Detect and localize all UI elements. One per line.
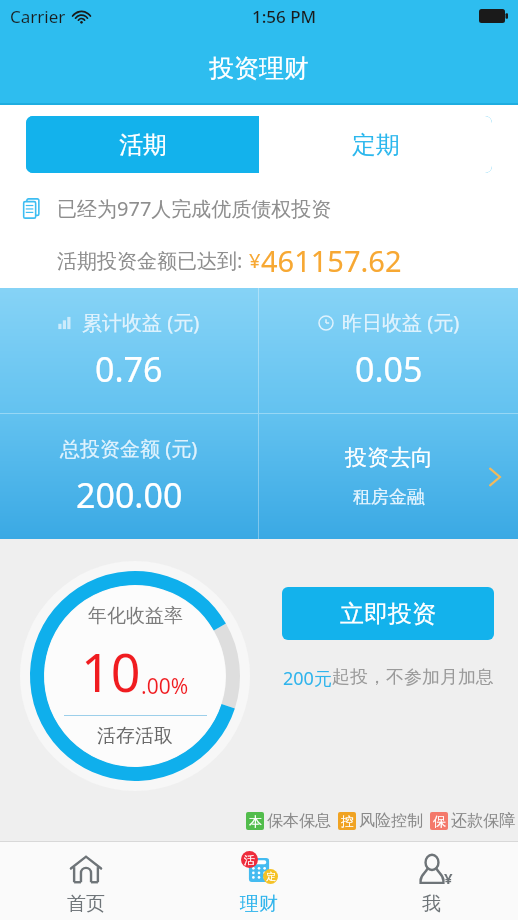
staticText: 投资理财	[209, 53, 309, 84]
staticText: 定期	[352, 130, 400, 160]
staticText: 昨日收益 (元)	[342, 309, 460, 336]
staticText: 立即投资	[340, 599, 436, 629]
staticText: 0.05	[355, 346, 423, 392]
staticText: 年化收益率	[88, 604, 183, 628]
staticText: 定	[266, 870, 276, 883]
button[interactable]: 累计收益 (元)	[0, 288, 258, 413]
staticText: 首页	[67, 892, 105, 916]
staticText: 活存活取	[97, 724, 173, 748]
staticText: 累计收益 (元)	[82, 309, 200, 336]
staticText: 活期	[119, 130, 167, 160]
other: 我	[413, 851, 451, 889]
button[interactable]: 定期	[259, 116, 492, 173]
button[interactable]: 投资去向	[259, 414, 518, 539]
staticText: 保本保息	[267, 811, 331, 831]
staticText: 活期投资金额已达到:	[57, 247, 243, 274]
staticText: 风险控制	[359, 811, 423, 831]
staticText: 1:56 PM	[252, 5, 317, 28]
staticText: 我	[422, 892, 441, 916]
button[interactable]: 活期	[26, 116, 259, 173]
staticText: 还款保障	[451, 811, 515, 831]
button[interactable]: 首页	[0, 842, 172, 920]
button[interactable]: 我	[345, 842, 518, 920]
staticText: Carrier	[10, 5, 66, 28]
staticText: 保	[433, 813, 446, 829]
button[interactable]: 理财	[172, 842, 345, 920]
staticText: 投资去向	[345, 444, 433, 472]
staticText: 0.76	[95, 346, 163, 392]
staticText: 200元	[283, 666, 332, 691]
other: 理财	[239, 850, 279, 890]
staticText: 200.00	[76, 472, 183, 518]
staticText: ¥	[444, 868, 453, 888]
staticText: 已经为977人完成优质债权投资	[57, 195, 332, 222]
staticText: 理财	[240, 892, 278, 916]
button[interactable]: 总投资金额 (元)	[0, 414, 258, 539]
staticText: 10	[81, 636, 141, 707]
staticText: 活	[244, 853, 255, 867]
staticText: 控	[341, 813, 354, 829]
button[interactable]: 立即投资	[282, 587, 494, 640]
staticText: 461157.62	[261, 241, 402, 280]
staticText: .00%	[141, 672, 189, 701]
staticText: 总投资金额 (元)	[60, 435, 198, 462]
staticText: 起投，不参加月加息	[332, 666, 494, 689]
button[interactable]: 昨日收益 (元)	[259, 288, 518, 413]
staticText: ¥	[249, 247, 261, 274]
staticText: 本	[249, 813, 262, 829]
other: 首页	[68, 852, 104, 888]
staticText: 租房金融	[353, 486, 425, 509]
